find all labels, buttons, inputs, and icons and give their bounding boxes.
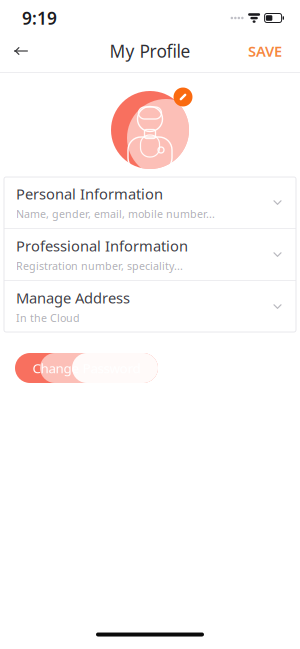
- staticText: Professional Information: [16, 236, 188, 256]
- button[interactable]: Manage Address: [4, 281, 296, 332]
- staticText: Personal Information: [16, 184, 163, 204]
- staticText: Change Password: [32, 359, 140, 377]
- button[interactable]: Change Password: [15, 353, 158, 383]
- staticText: In the Cloud: [16, 311, 80, 325]
- staticText: My Profile: [109, 39, 190, 62]
- staticText: 9:19: [22, 6, 57, 29]
- staticText: SAVE: [248, 41, 282, 61]
- staticText: Name, gender, email, mobile number...: [16, 207, 215, 221]
- button[interactable]: Edit profile photo: [105, 87, 195, 173]
- button[interactable]: SAVE: [240, 35, 290, 67]
- staticText: Manage Address: [16, 288, 130, 308]
- button[interactable]: Professional Information: [4, 229, 296, 280]
- button[interactable]: Personal Information: [4, 177, 296, 228]
- staticText: Registration number, speciality...: [16, 259, 183, 273]
- button[interactable]: Back: [4, 36, 38, 66]
